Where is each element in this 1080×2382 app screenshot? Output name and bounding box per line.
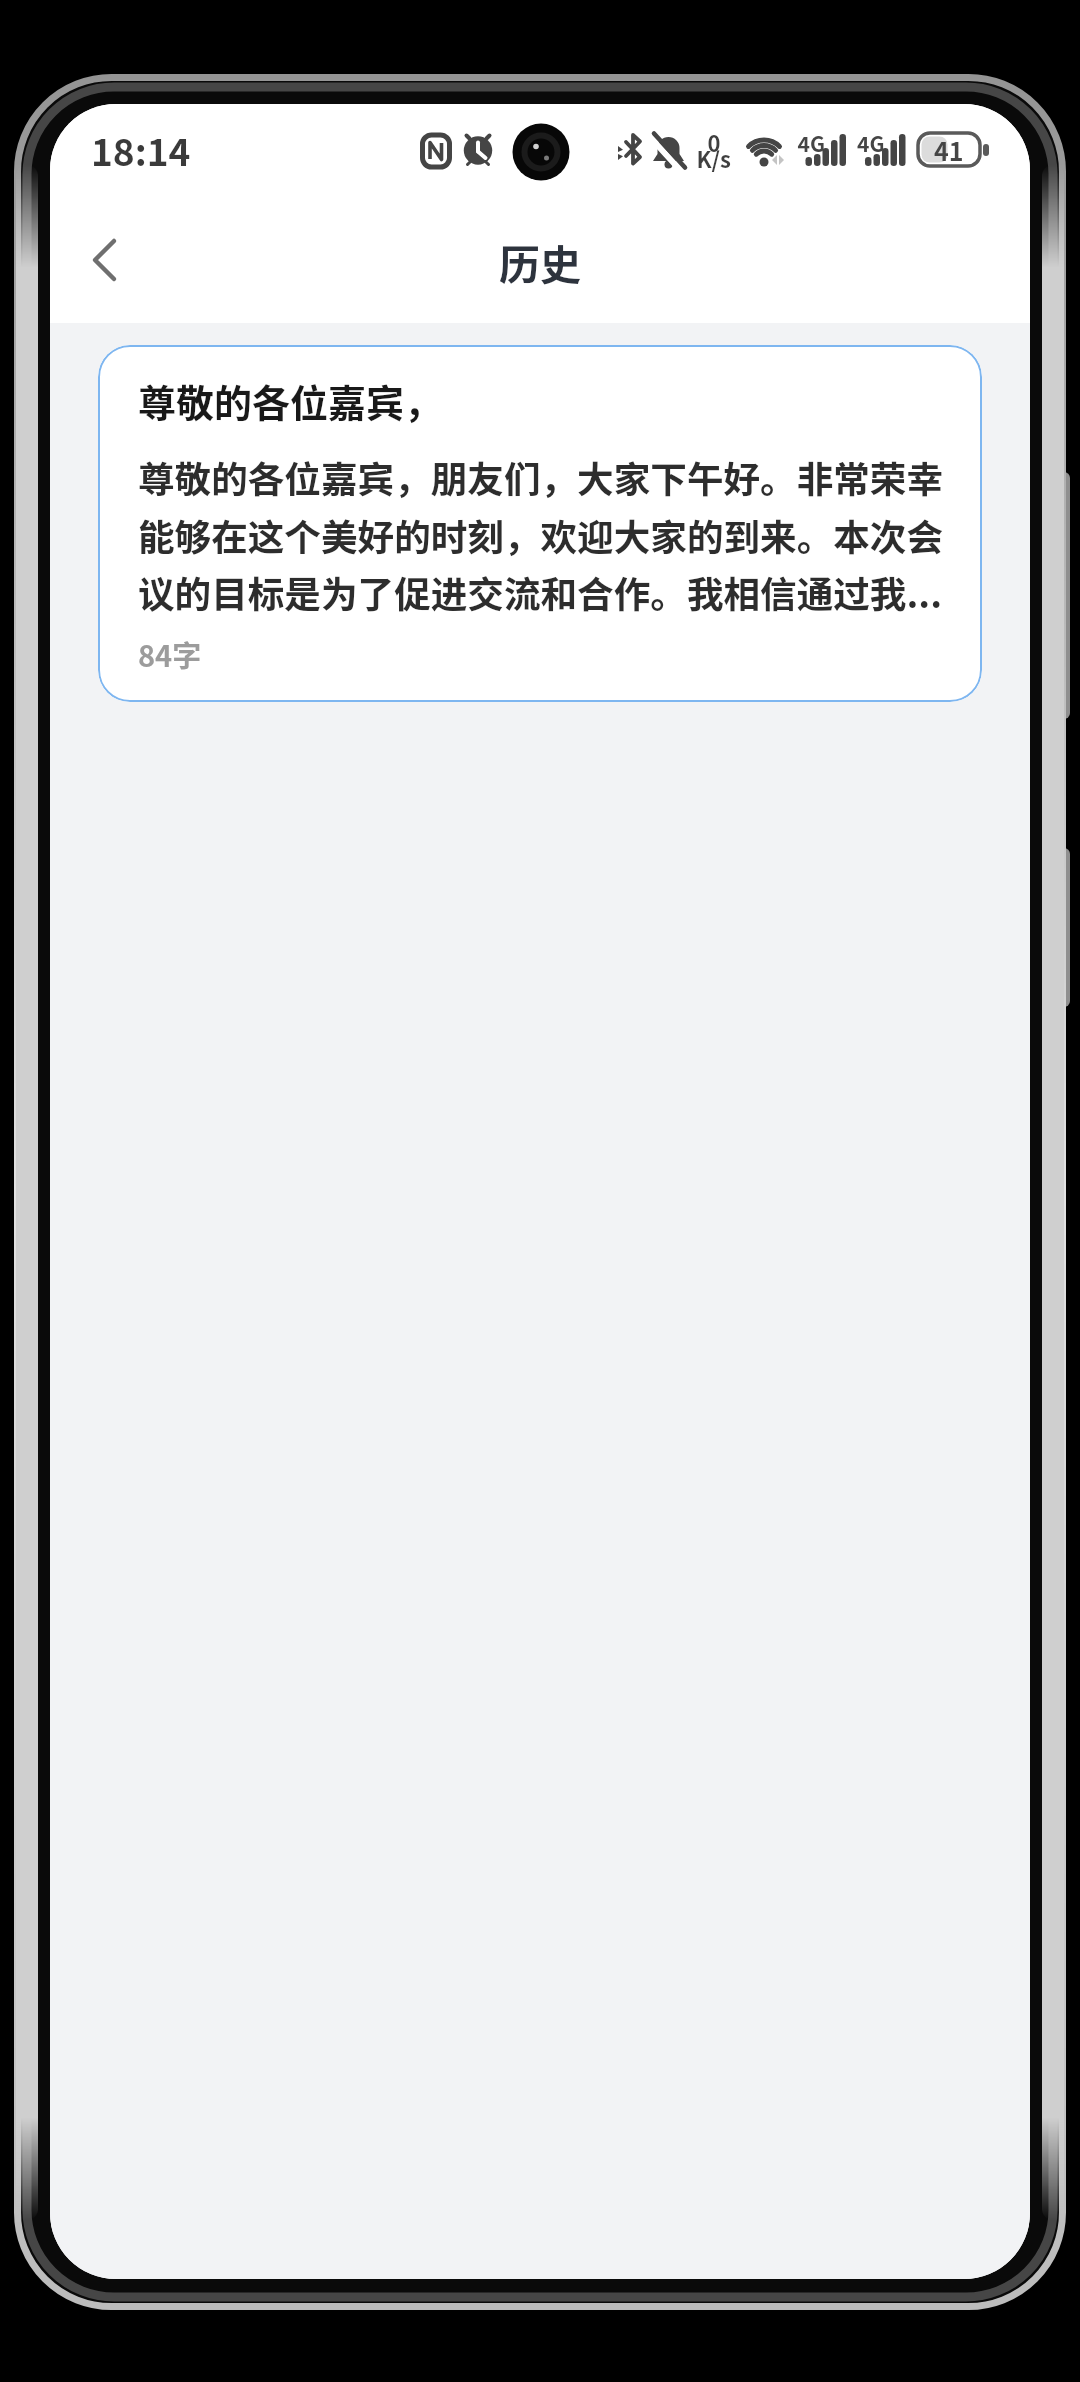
staticText: 历史	[499, 232, 581, 291]
staticText: 尊敬的各位嘉宾，	[138, 373, 443, 428]
staticText: 84字	[138, 633, 202, 675]
staticText: 尊敬的各位嘉宾，朋友们，大家下午好。非常荣幸 能够在这个美好的时刻，欢迎大家的到…	[138, 451, 944, 618]
button[interactable]: 尊敬的各位嘉宾，	[98, 345, 982, 702]
button[interactable]	[70, 225, 160, 295]
